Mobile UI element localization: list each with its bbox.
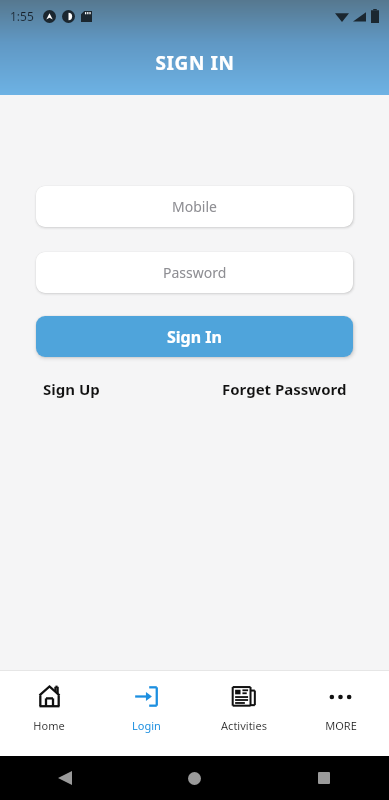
- staticText: Sign Up: [43, 379, 100, 399]
- staticText: 1:55: [10, 8, 34, 24]
- staticText: SIGN IN: [155, 50, 235, 76]
- button[interactable]: Home: [0, 670, 98, 756]
- button[interactable]: Sign In: [36, 316, 353, 357]
- button[interactable]: More: [292, 670, 389, 756]
- button[interactable]: Back: [0, 756, 129, 800]
- staticText: Login: [132, 718, 161, 733]
- staticText: Forget Password: [222, 379, 347, 399]
- button[interactable]: Activities: [195, 670, 292, 756]
- button[interactable]: Sign Up: [43, 379, 100, 399]
- button[interactable]: Forget Password: [222, 379, 347, 399]
- staticText: Activities: [221, 718, 267, 733]
- staticText: Home: [33, 718, 65, 733]
- staticText: Password: [163, 263, 227, 282]
- button[interactable]: Login: [98, 670, 195, 756]
- button[interactable]: Recent apps: [259, 756, 389, 800]
- staticText: MORE: [325, 718, 357, 733]
- staticText: Sign In: [167, 326, 222, 348]
- button[interactable]: Home: [129, 756, 259, 800]
- button[interactable]: Password: [36, 252, 353, 293]
- button[interactable]: Mobile: [36, 186, 353, 227]
- staticText: Mobile: [172, 197, 217, 216]
